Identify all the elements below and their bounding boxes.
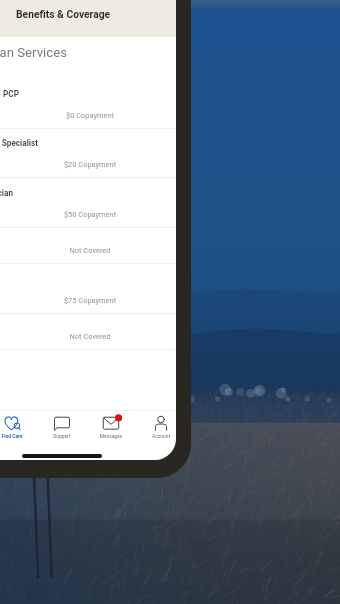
button[interactable] — [0, 227, 176, 263]
button[interactable] — [0, 178, 176, 228]
other: Messages — [100, 414, 122, 432]
staticText: Family Physician — [0, 188, 13, 198]
staticText: Benefits & Coverage — [16, 8, 111, 20]
staticText: $75 Copayment — [40, 296, 140, 305]
button[interactable]: Messages — [88, 411, 134, 444]
button[interactable] — [0, 313, 176, 349]
button[interactable] — [0, 79, 176, 129]
button[interactable] — [0, 263, 176, 313]
staticText: Plan Services — [0, 45, 67, 60]
staticText: Account — [138, 433, 176, 439]
other: Find Care — [1, 414, 23, 432]
button[interactable]: Find Care — [0, 411, 35, 444]
staticText: Primary Care Physician - PCP — [0, 89, 19, 99]
staticText: Support — [39, 433, 85, 439]
staticText: Not Covered — [40, 246, 140, 255]
other: Support — [51, 414, 73, 432]
button[interactable] — [0, 128, 176, 178]
staticText: Messages — [88, 433, 134, 439]
button[interactable]: Support — [39, 411, 85, 444]
staticText: $50 Copayment — [40, 210, 140, 219]
staticText: Find Care — [0, 433, 35, 439]
button[interactable]: Account — [138, 411, 176, 444]
staticText: Specialty Care - Specialist — [0, 138, 38, 148]
staticText: Not Covered — [40, 332, 140, 341]
other: Account — [150, 414, 172, 432]
staticText: $20 Copayment — [40, 160, 140, 169]
staticText: $0 Copayment — [40, 111, 140, 120]
